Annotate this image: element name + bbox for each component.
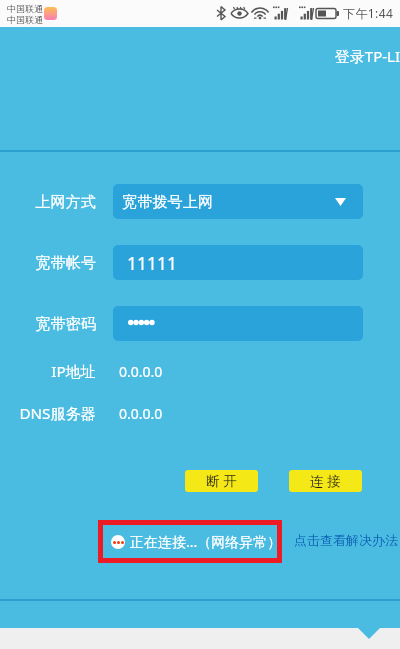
staticText: 正在连接...（网络异常） bbox=[130, 532, 282, 551]
staticText: 连 接 bbox=[310, 471, 341, 490]
button[interactable]: 断 开 bbox=[185, 470, 258, 492]
staticText: 中国联通 bbox=[7, 3, 43, 14]
staticText: 登录TP-LI bbox=[0, 46, 400, 66]
staticText: 宽带密码 bbox=[35, 314, 96, 333]
staticText: 11111 bbox=[127, 251, 178, 275]
staticText: 宽带帐号 bbox=[35, 253, 96, 272]
other: Status icons bbox=[215, 5, 340, 22]
staticText: 0.0.0.0 bbox=[119, 404, 163, 423]
button[interactable]: 11111 bbox=[113, 245, 363, 280]
staticText: 中国联通 bbox=[7, 14, 43, 25]
button[interactable]: 正在连接...（网络异常） bbox=[98, 520, 282, 563]
staticText: 下午1:44 bbox=[343, 5, 394, 21]
button[interactable]: 宽带拨号上网 bbox=[113, 184, 363, 219]
button[interactable]: 点击查看解决办法 bbox=[294, 529, 398, 551]
button[interactable]: 连 接 bbox=[289, 470, 362, 492]
staticText: DNS服务器 bbox=[19, 403, 96, 424]
staticText: 宽带拨号上网 bbox=[122, 192, 214, 211]
staticText: 点击查看解决办法 bbox=[294, 532, 398, 548]
staticText: 0.0.0.0 bbox=[119, 362, 163, 381]
button[interactable] bbox=[113, 306, 363, 341]
staticText: IP地址 bbox=[51, 361, 96, 382]
staticText: 上网方式 bbox=[35, 192, 96, 211]
staticText: 断 开 bbox=[206, 471, 237, 490]
